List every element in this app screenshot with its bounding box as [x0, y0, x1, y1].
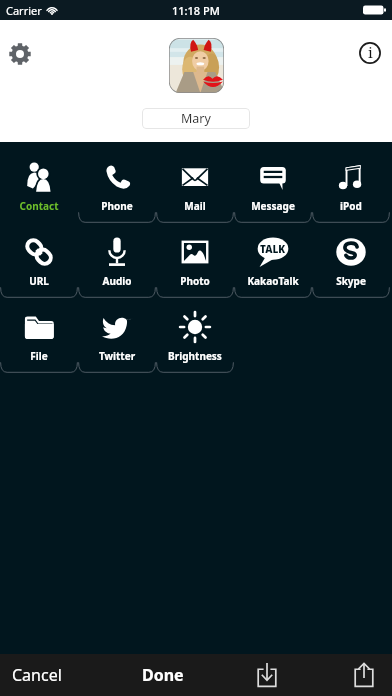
button[interactable]: Cancel [12, 664, 62, 686]
staticText: Mary [181, 110, 211, 127]
button[interactable]: Mail [156, 148, 234, 223]
button[interactable]: Settings [7, 41, 33, 67]
staticText: TALK [260, 242, 286, 256]
button[interactable]: Share [348, 659, 380, 691]
staticText: URL [0, 274, 78, 288]
button[interactable]: Message [234, 148, 312, 223]
staticText: Phone [78, 199, 156, 213]
staticText: iPod [312, 199, 390, 213]
staticText: Carrier [6, 3, 42, 18]
button[interactable]: URL [0, 223, 78, 298]
button[interactable]: Brightness [156, 298, 234, 373]
button[interactable]: Contact [0, 148, 78, 223]
button[interactable]: Phone [78, 148, 156, 223]
staticText: i [368, 42, 373, 62]
button[interactable]: Audio [78, 223, 156, 298]
button[interactable]: Skype [312, 223, 390, 298]
staticText: Cancel [12, 664, 62, 686]
staticText: Brightness [156, 349, 234, 363]
button[interactable]: Twitter [78, 298, 156, 373]
staticText: Contact [0, 199, 78, 213]
button[interactable]: Done [142, 664, 184, 686]
button[interactable]: File [0, 298, 78, 373]
staticText: Audio [78, 274, 156, 288]
button[interactable]: Save [251, 659, 283, 691]
button[interactable]: TALK [234, 223, 312, 298]
staticText: 11:18 PM [172, 3, 220, 18]
staticText: File [0, 349, 78, 363]
button[interactable]: iPod [312, 148, 390, 223]
staticText: Twitter [78, 349, 156, 363]
staticText: Done [142, 664, 184, 686]
staticText: KakaoTalk [234, 274, 312, 288]
button[interactable]: Photo [156, 223, 234, 298]
staticText: Skype [312, 274, 390, 288]
staticText: Message [234, 199, 312, 213]
staticText: Mail [156, 199, 234, 213]
button[interactable]: Profile photo [169, 38, 224, 93]
button[interactable]: Mary [142, 108, 250, 129]
staticText: Photo [156, 274, 234, 288]
button[interactable]: Info [359, 42, 381, 64]
